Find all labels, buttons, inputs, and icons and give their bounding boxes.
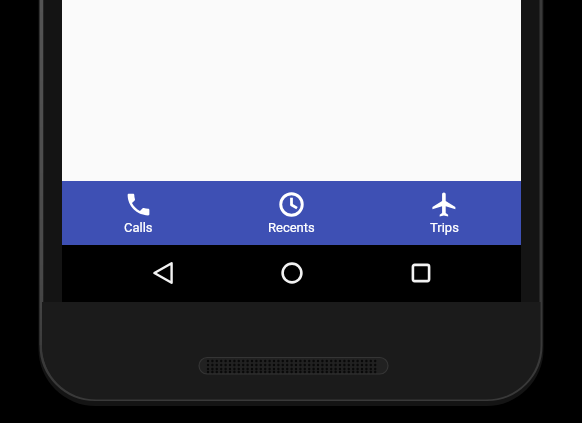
button[interactable]: Recents	[215, 181, 368, 245]
button[interactable]	[260, 245, 324, 302]
staticText: Recents	[268, 220, 315, 235]
button[interactable]: Trips	[368, 181, 521, 245]
button[interactable]: Calls	[62, 181, 215, 245]
button[interactable]	[131, 245, 195, 302]
staticText: Trips	[430, 220, 459, 235]
button[interactable]	[389, 245, 453, 302]
staticText: Calls	[124, 220, 153, 235]
